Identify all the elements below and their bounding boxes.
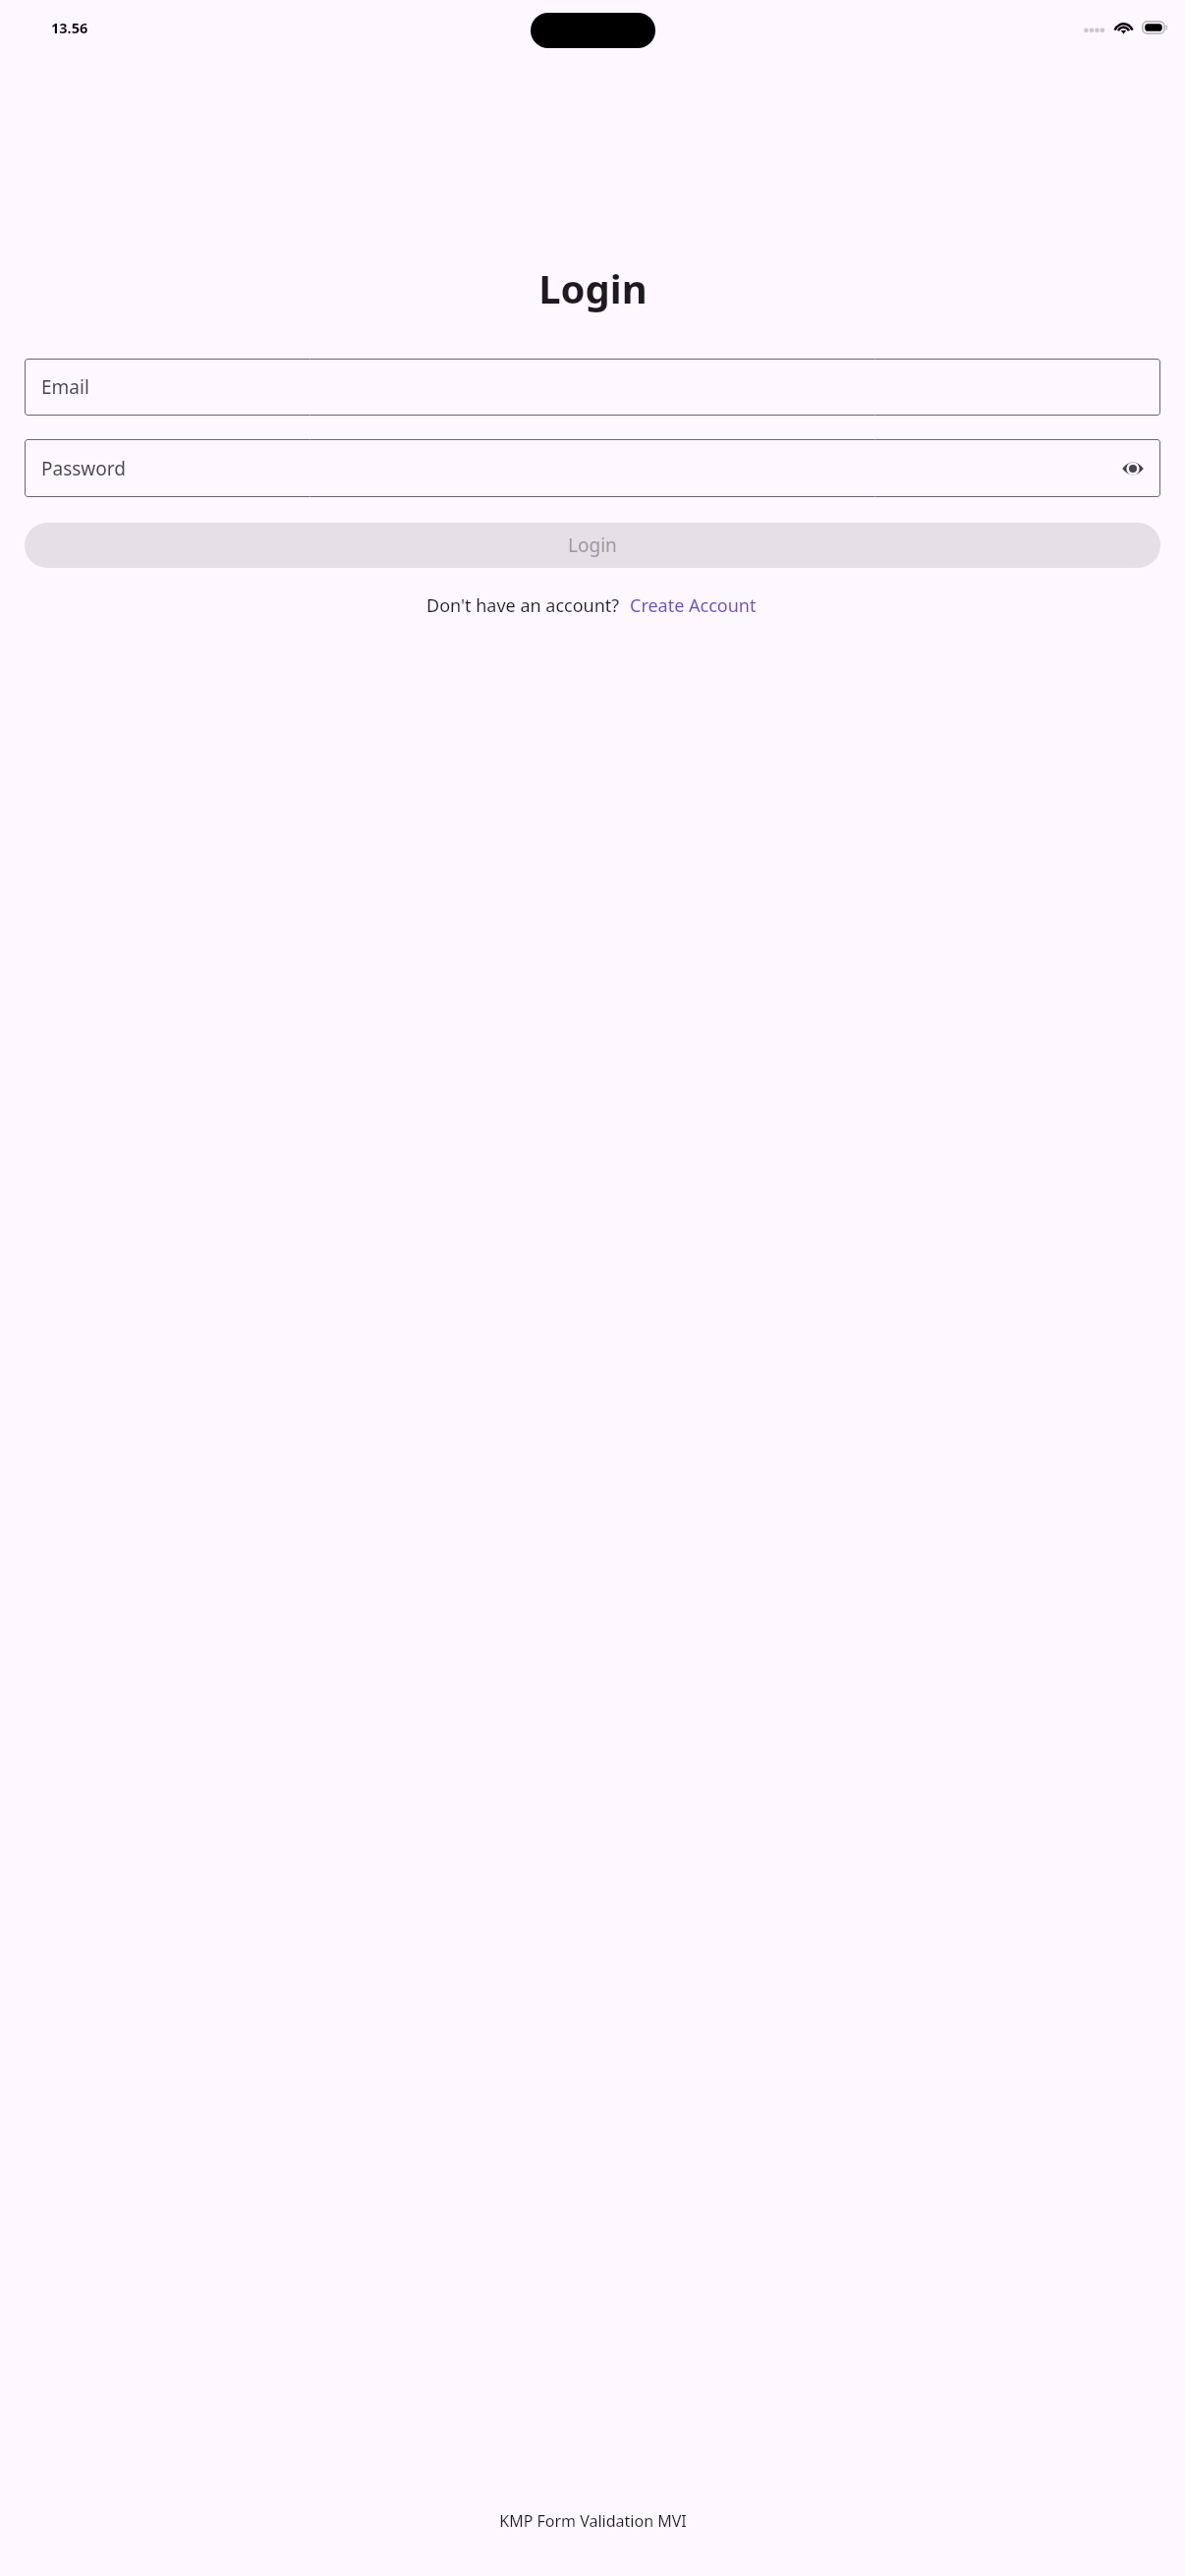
- staticText: Login: [538, 261, 648, 314]
- staticText: Don't have an account?: [426, 593, 620, 618]
- button[interactable]: Create Account: [628, 591, 759, 620]
- staticText: Login: [568, 532, 617, 558]
- staticText: KMP Form Validation MVI: [499, 2510, 687, 2532]
- staticText: 13.56: [51, 18, 88, 37]
- button[interactable]: Email: [25, 359, 1160, 416]
- staticText: Create Account: [630, 593, 757, 618]
- staticText: Email: [41, 374, 89, 400]
- button[interactable]: Login: [25, 523, 1160, 568]
- staticText: Password: [41, 456, 126, 481]
- button[interactable]: Password: [25, 439, 1160, 497]
- button[interactable]: Show password: [1113, 449, 1153, 488]
